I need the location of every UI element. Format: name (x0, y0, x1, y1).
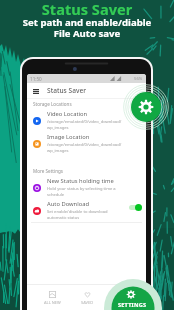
staticText: Set enable/disable to download automatic… (47, 209, 108, 220)
button[interactable]: Settings tab (0, 0, 174, 310)
staticText: Video Location (47, 110, 88, 118)
button[interactable]: Auto download toggle (129, 204, 142, 211)
button[interactable]: Image Location (27, 132, 146, 155)
button[interactable]: SAVED (70, 285, 105, 310)
staticText: Image Location (47, 133, 90, 141)
staticText: More Settings (33, 168, 64, 174)
button[interactable]: Auto Download (27, 199, 146, 222)
button[interactable]: New Status holding time (27, 176, 146, 199)
staticText: Status Saver (47, 86, 86, 95)
staticText: New Status holding time (47, 177, 114, 185)
staticText: SAVED (81, 300, 94, 305)
button[interactable]: SETTINGS (105, 285, 140, 310)
staticText: Status Saver (0, 0, 174, 19)
staticText: ALL NEW (44, 300, 61, 305)
staticText: /storage/emulated/0/video_download/ wp_i… (47, 142, 122, 153)
staticText: /storage/emulated/0/video_download/ wp_i… (47, 119, 122, 130)
staticText: Storage Locations (33, 101, 72, 107)
staticText: SETTINGS (113, 300, 132, 305)
staticText: 56% (134, 76, 143, 82)
button[interactable]: Video Location (27, 109, 146, 132)
staticText: SETTINGS (118, 301, 147, 309)
staticText: Set path and enable/diable (0, 16, 174, 29)
button[interactable]: ALL NEW (35, 285, 70, 310)
button[interactable]: Menu (33, 88, 39, 94)
staticText: Auto Download (47, 200, 89, 208)
staticText: 11:50 (30, 76, 42, 82)
staticText: Hold your status by selecting time a sch… (47, 186, 116, 197)
staticText: File Auto save (0, 27, 174, 40)
button[interactable]: Settings (0, 0, 174, 310)
